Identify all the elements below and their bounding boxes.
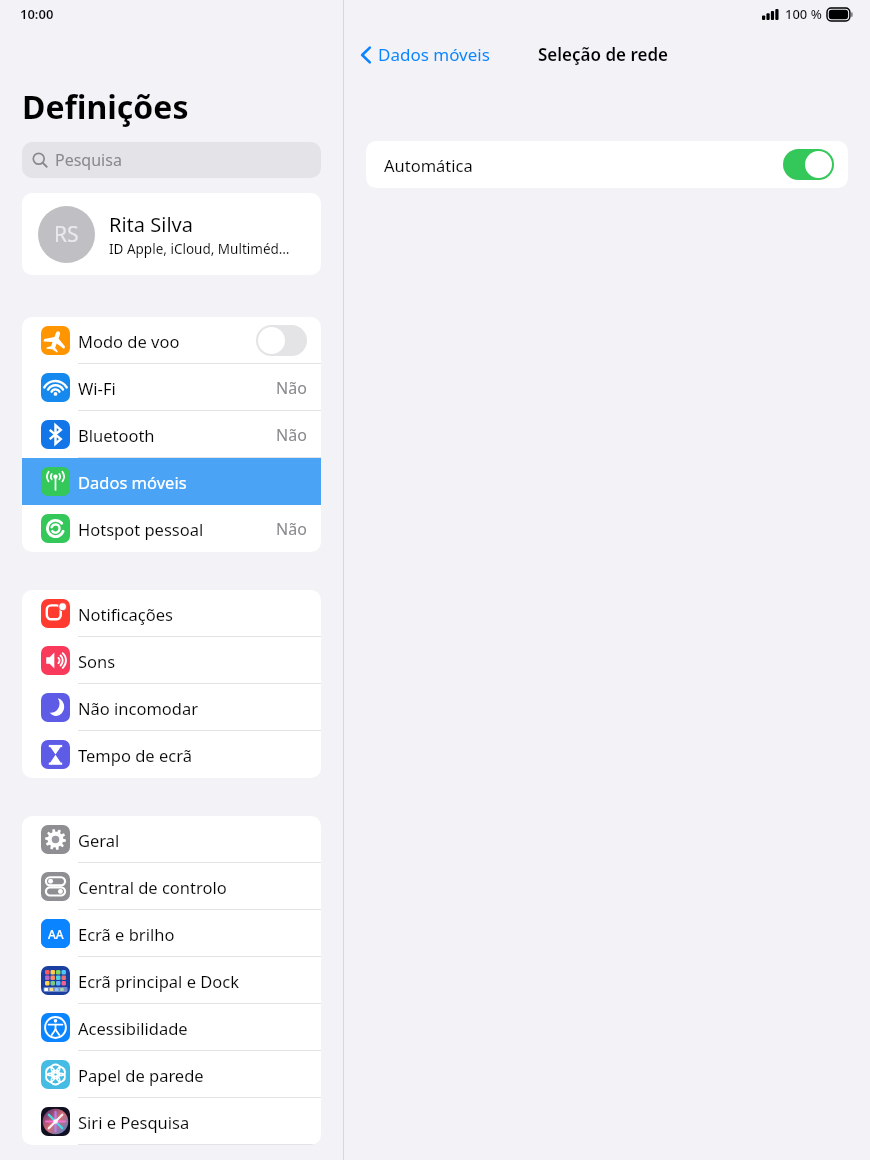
staticText: RS [54,220,79,249]
button[interactable]: Tempo de ecrã [22,731,321,778]
button[interactable]: Papel de parede [22,1051,321,1098]
button[interactable]: Automática [783,149,834,180]
button[interactable]: Wi-Fi [22,364,321,411]
button[interactable]: Bluetooth [22,411,321,458]
staticText: Não [276,377,307,399]
staticText: Não [276,424,307,446]
button[interactable]: Hotspot pessoal [22,505,321,552]
staticText: Dados móveis [78,471,307,493]
staticText: Tempo de ecrã [78,744,307,766]
staticText: ID Apple, iCloud, Multiméd… [109,240,290,258]
button[interactable]: Automática [366,141,848,188]
staticText: Sons [78,650,307,672]
button[interactable]: Não incomodar [22,684,321,731]
button[interactable]: Ecrã principal e Dock [22,957,321,1004]
button[interactable]: Siri e Pesquisa [22,1098,321,1145]
staticText: Geral [78,829,307,851]
staticText: Ecrã e brilho [78,923,307,945]
staticText: Não incomodar [78,697,307,719]
staticText: Hotspot pessoal [78,518,276,540]
staticText: Siri e Pesquisa [78,1111,307,1133]
button[interactable]: Modo de voo [256,325,307,356]
button[interactable]: Modo de voo [22,317,321,364]
staticText: Automática [384,154,783,176]
staticText: Rita Silva [109,211,193,238]
staticText: Wi-Fi [78,377,276,399]
button[interactable]: Geral [22,816,321,863]
button[interactable]: Notificações [22,590,321,637]
staticText: AA [48,926,64,942]
staticText: Acessibilidade [78,1017,307,1039]
button[interactable]: RS [22,193,321,275]
staticText: Notificações [78,603,307,625]
staticText: Não [276,518,307,540]
staticText: Papel de parede [78,1064,307,1086]
staticText: 10:00 [20,5,54,23]
button[interactable]: Sons [22,637,321,684]
button[interactable]: Central de controlo [22,863,321,910]
staticText: 100 % [785,5,822,23]
button[interactable]: Dados móveis [356,39,494,70]
button[interactable]: Pesquisa [22,142,321,178]
staticText: Seleção de rede [538,43,669,66]
staticText: Pesquisa [55,149,122,171]
button[interactable]: AA [22,910,321,957]
staticText: Definições [22,85,189,129]
staticText: Modo de voo [78,330,256,352]
button[interactable]: Acessibilidade [22,1004,321,1051]
staticText: Bluetooth [78,424,276,446]
staticText: Central de controlo [78,876,307,898]
staticText: Dados móveis [378,43,490,66]
button[interactable]: Dados móveis [22,458,321,505]
staticText: Ecrã principal e Dock [78,970,307,992]
